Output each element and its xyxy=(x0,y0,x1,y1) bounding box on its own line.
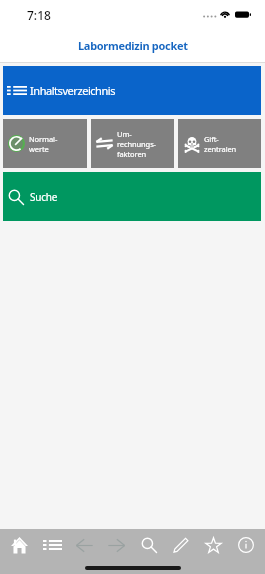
button[interactable]: Suche xyxy=(3,172,261,221)
staticText: Suche xyxy=(30,190,58,204)
button[interactable]: Um- rechnungs- faktoren xyxy=(91,119,174,168)
button[interactable]: Favorites xyxy=(200,532,226,558)
button[interactable]: Contents xyxy=(39,532,65,558)
staticText: Inhaltsverzeichnis xyxy=(30,83,116,98)
staticText: Labormedizin pocket xyxy=(78,38,188,53)
button[interactable]: Edit xyxy=(168,532,194,558)
button[interactable]: Forward xyxy=(103,532,129,558)
button[interactable]: Back xyxy=(71,532,97,558)
button[interactable]: Search xyxy=(136,532,162,558)
button[interactable]: Home xyxy=(6,532,32,558)
button[interactable]: Inhaltsverzeichnis xyxy=(3,66,261,115)
button[interactable]: Gift- zentralen xyxy=(178,119,261,168)
staticText: Normal- werte xyxy=(29,134,58,154)
button[interactable]: Normal- werte xyxy=(3,119,87,168)
staticText: 7:18 xyxy=(27,7,51,23)
button[interactable]: Info xyxy=(233,532,259,558)
staticText: Gift- zentralen xyxy=(204,134,237,154)
staticText: Um- rechnungs- faktoren xyxy=(117,129,156,159)
